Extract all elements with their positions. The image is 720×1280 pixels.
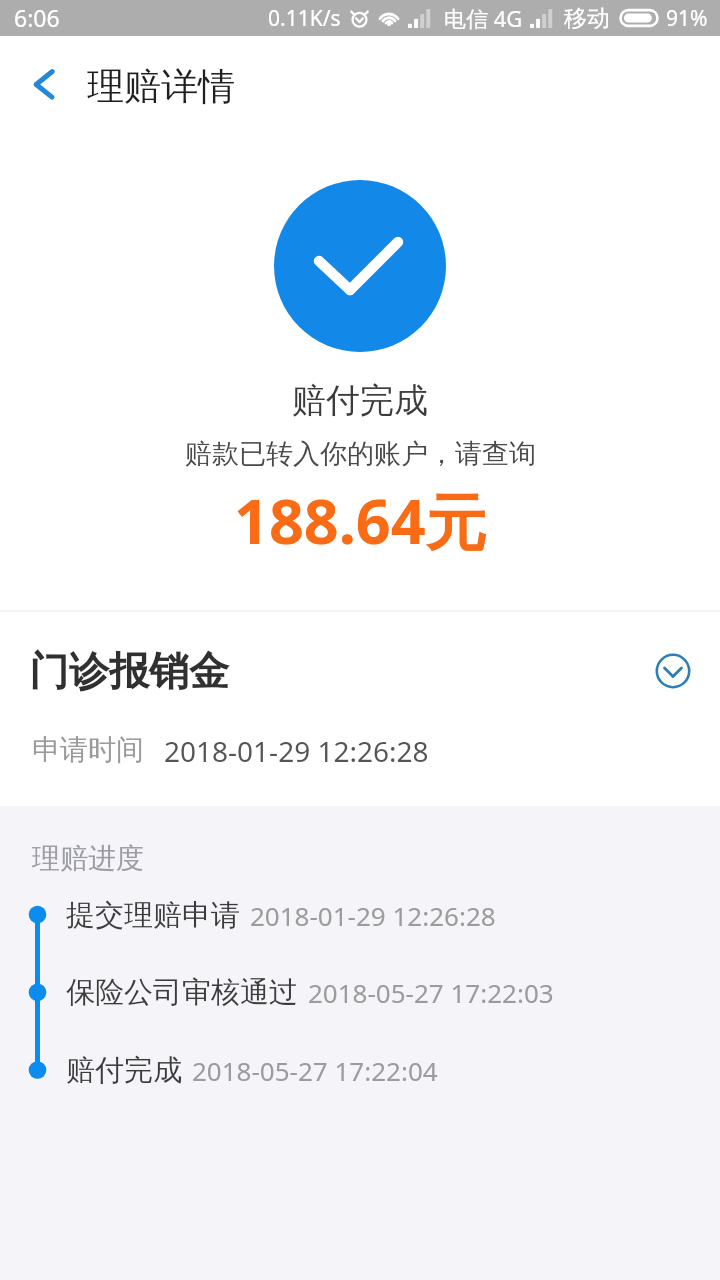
staticText: 2018-05-27 17:22:03 xyxy=(308,975,554,1010)
staticText: 理赔进度 xyxy=(32,841,144,876)
staticText: 门诊报销金 xyxy=(29,646,229,696)
staticText: 0.11K/s xyxy=(268,4,341,33)
staticText: 6:06 xyxy=(14,2,60,33)
staticText: 91% xyxy=(666,4,708,33)
staticText: 赔付完成 xyxy=(66,1052,182,1089)
staticText: 188.64元 xyxy=(234,479,487,562)
button[interactable]: 门诊报销金 xyxy=(0,642,720,700)
staticText: 2018-01-29 12:26:28 xyxy=(164,732,429,770)
button[interactable]: Expand claim details xyxy=(644,642,702,700)
staticText: 保险公司审核通过 xyxy=(66,974,298,1011)
staticText: 2018-05-27 17:22:04 xyxy=(192,1053,438,1088)
staticText: 电信 4G xyxy=(444,3,523,33)
button[interactable]: 提交理赔申请 xyxy=(0,895,720,935)
other: Claim paid xyxy=(274,180,446,352)
staticText: 提交理赔申请 xyxy=(66,897,240,934)
button[interactable]: 保险公司审核通过 xyxy=(0,972,720,1012)
button[interactable]: Back xyxy=(12,54,76,118)
staticText: 申请时间 xyxy=(32,732,144,767)
staticText: 理赔详情 xyxy=(87,63,235,110)
button[interactable]: 赔付完成 xyxy=(0,1050,720,1090)
staticText: 移动 xyxy=(564,4,610,33)
staticText: 赔付完成 xyxy=(292,379,428,422)
staticText: 2018-01-29 12:26:28 xyxy=(250,898,496,933)
staticText: 赔款已转入你的账户，请查询 xyxy=(185,437,536,471)
